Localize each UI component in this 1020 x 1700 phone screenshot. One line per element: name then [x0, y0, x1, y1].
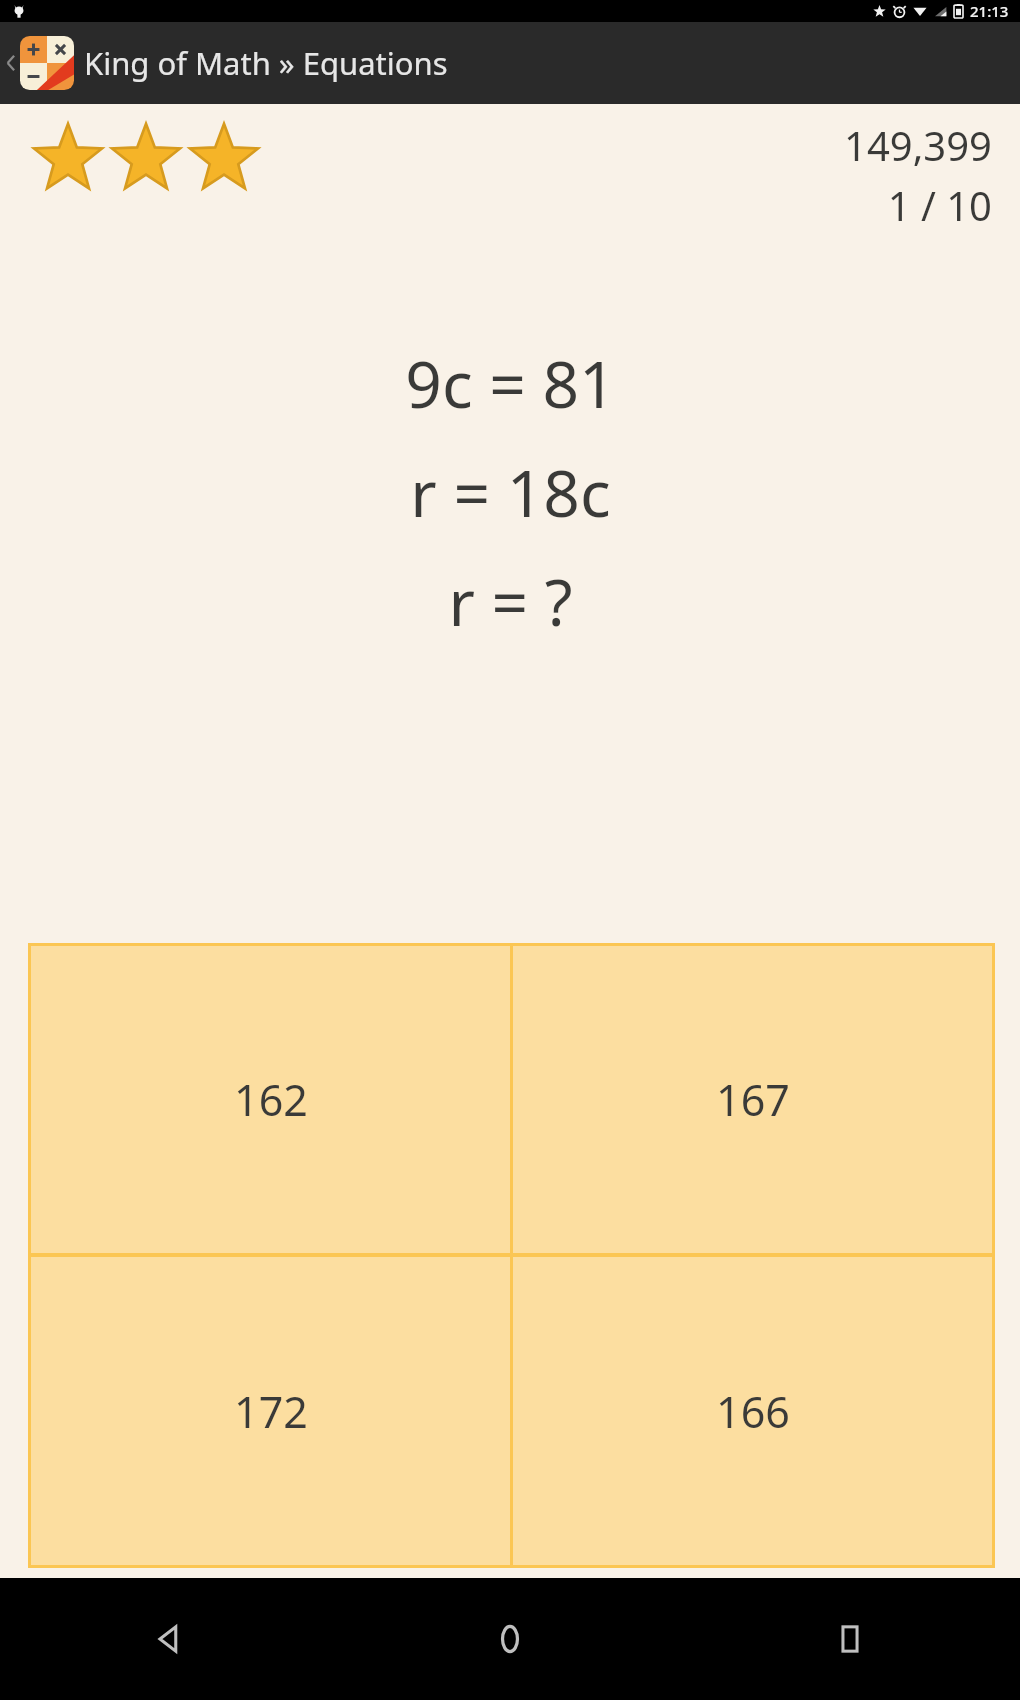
staticText: 162 — [234, 1070, 308, 1129]
staticText: 149,399 — [844, 118, 992, 172]
staticText: 9c = 81 — [405, 340, 616, 427]
button[interactable]: Home — [340, 1578, 680, 1700]
button[interactable]: 172 — [31, 1257, 510, 1565]
staticText: r = 18c — [410, 449, 611, 536]
button[interactable]: 167 — [513, 946, 992, 1253]
staticText: 167 — [716, 1070, 790, 1129]
staticText: 21:13 — [970, 1, 1009, 21]
button[interactable]: Back — [0, 22, 1020, 104]
staticText: r = ? — [448, 558, 573, 645]
other: Back — [4, 50, 18, 76]
staticText: King of Math » Equations — [84, 42, 448, 84]
button[interactable]: Recent apps — [680, 1578, 1020, 1700]
staticText: 172 — [234, 1382, 308, 1441]
button[interactable]: 166 — [513, 1257, 992, 1565]
button[interactable]: 162 — [31, 946, 510, 1253]
staticText: 166 — [716, 1382, 790, 1441]
button[interactable]: Back — [0, 1578, 340, 1700]
staticText: 1 / 10 — [887, 178, 992, 224]
